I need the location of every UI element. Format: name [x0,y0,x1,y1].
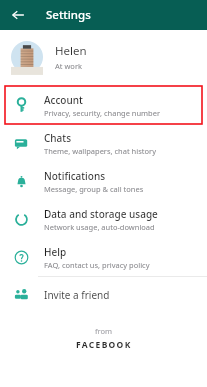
staticText: FACEBOOK [76,339,132,351]
staticText: At work [55,61,82,71]
staticText: Helen [55,43,87,59]
staticText: Data and storage usage [44,207,158,221]
staticText: Privacy, security, change number [44,108,161,118]
button[interactable]: Chats [0,124,207,162]
button[interactable]: Data and storage usage [0,200,207,238]
button[interactable]: Help [0,238,207,276]
staticText: from [95,326,113,336]
staticText: Message, group & call tones [44,184,144,194]
button[interactable]: Helen [0,30,207,84]
staticText: Notifications [44,169,106,183]
button[interactable]: Notifications [0,162,207,200]
staticText: Invite a friend [44,288,110,302]
button[interactable]: Invite a friend [0,277,207,312]
staticText: Settings [46,7,91,23]
staticText: FAQ, contact us, privacy policy [44,260,150,270]
staticText: Chats [44,131,72,145]
button[interactable]: Back [6,3,30,27]
staticText: Account [44,93,83,107]
staticText: Help [44,245,67,259]
staticText: Theme, wallpapers, chat history [44,146,156,156]
button[interactable]: Account [0,86,207,124]
staticText: Network usage, auto-download [44,222,155,232]
